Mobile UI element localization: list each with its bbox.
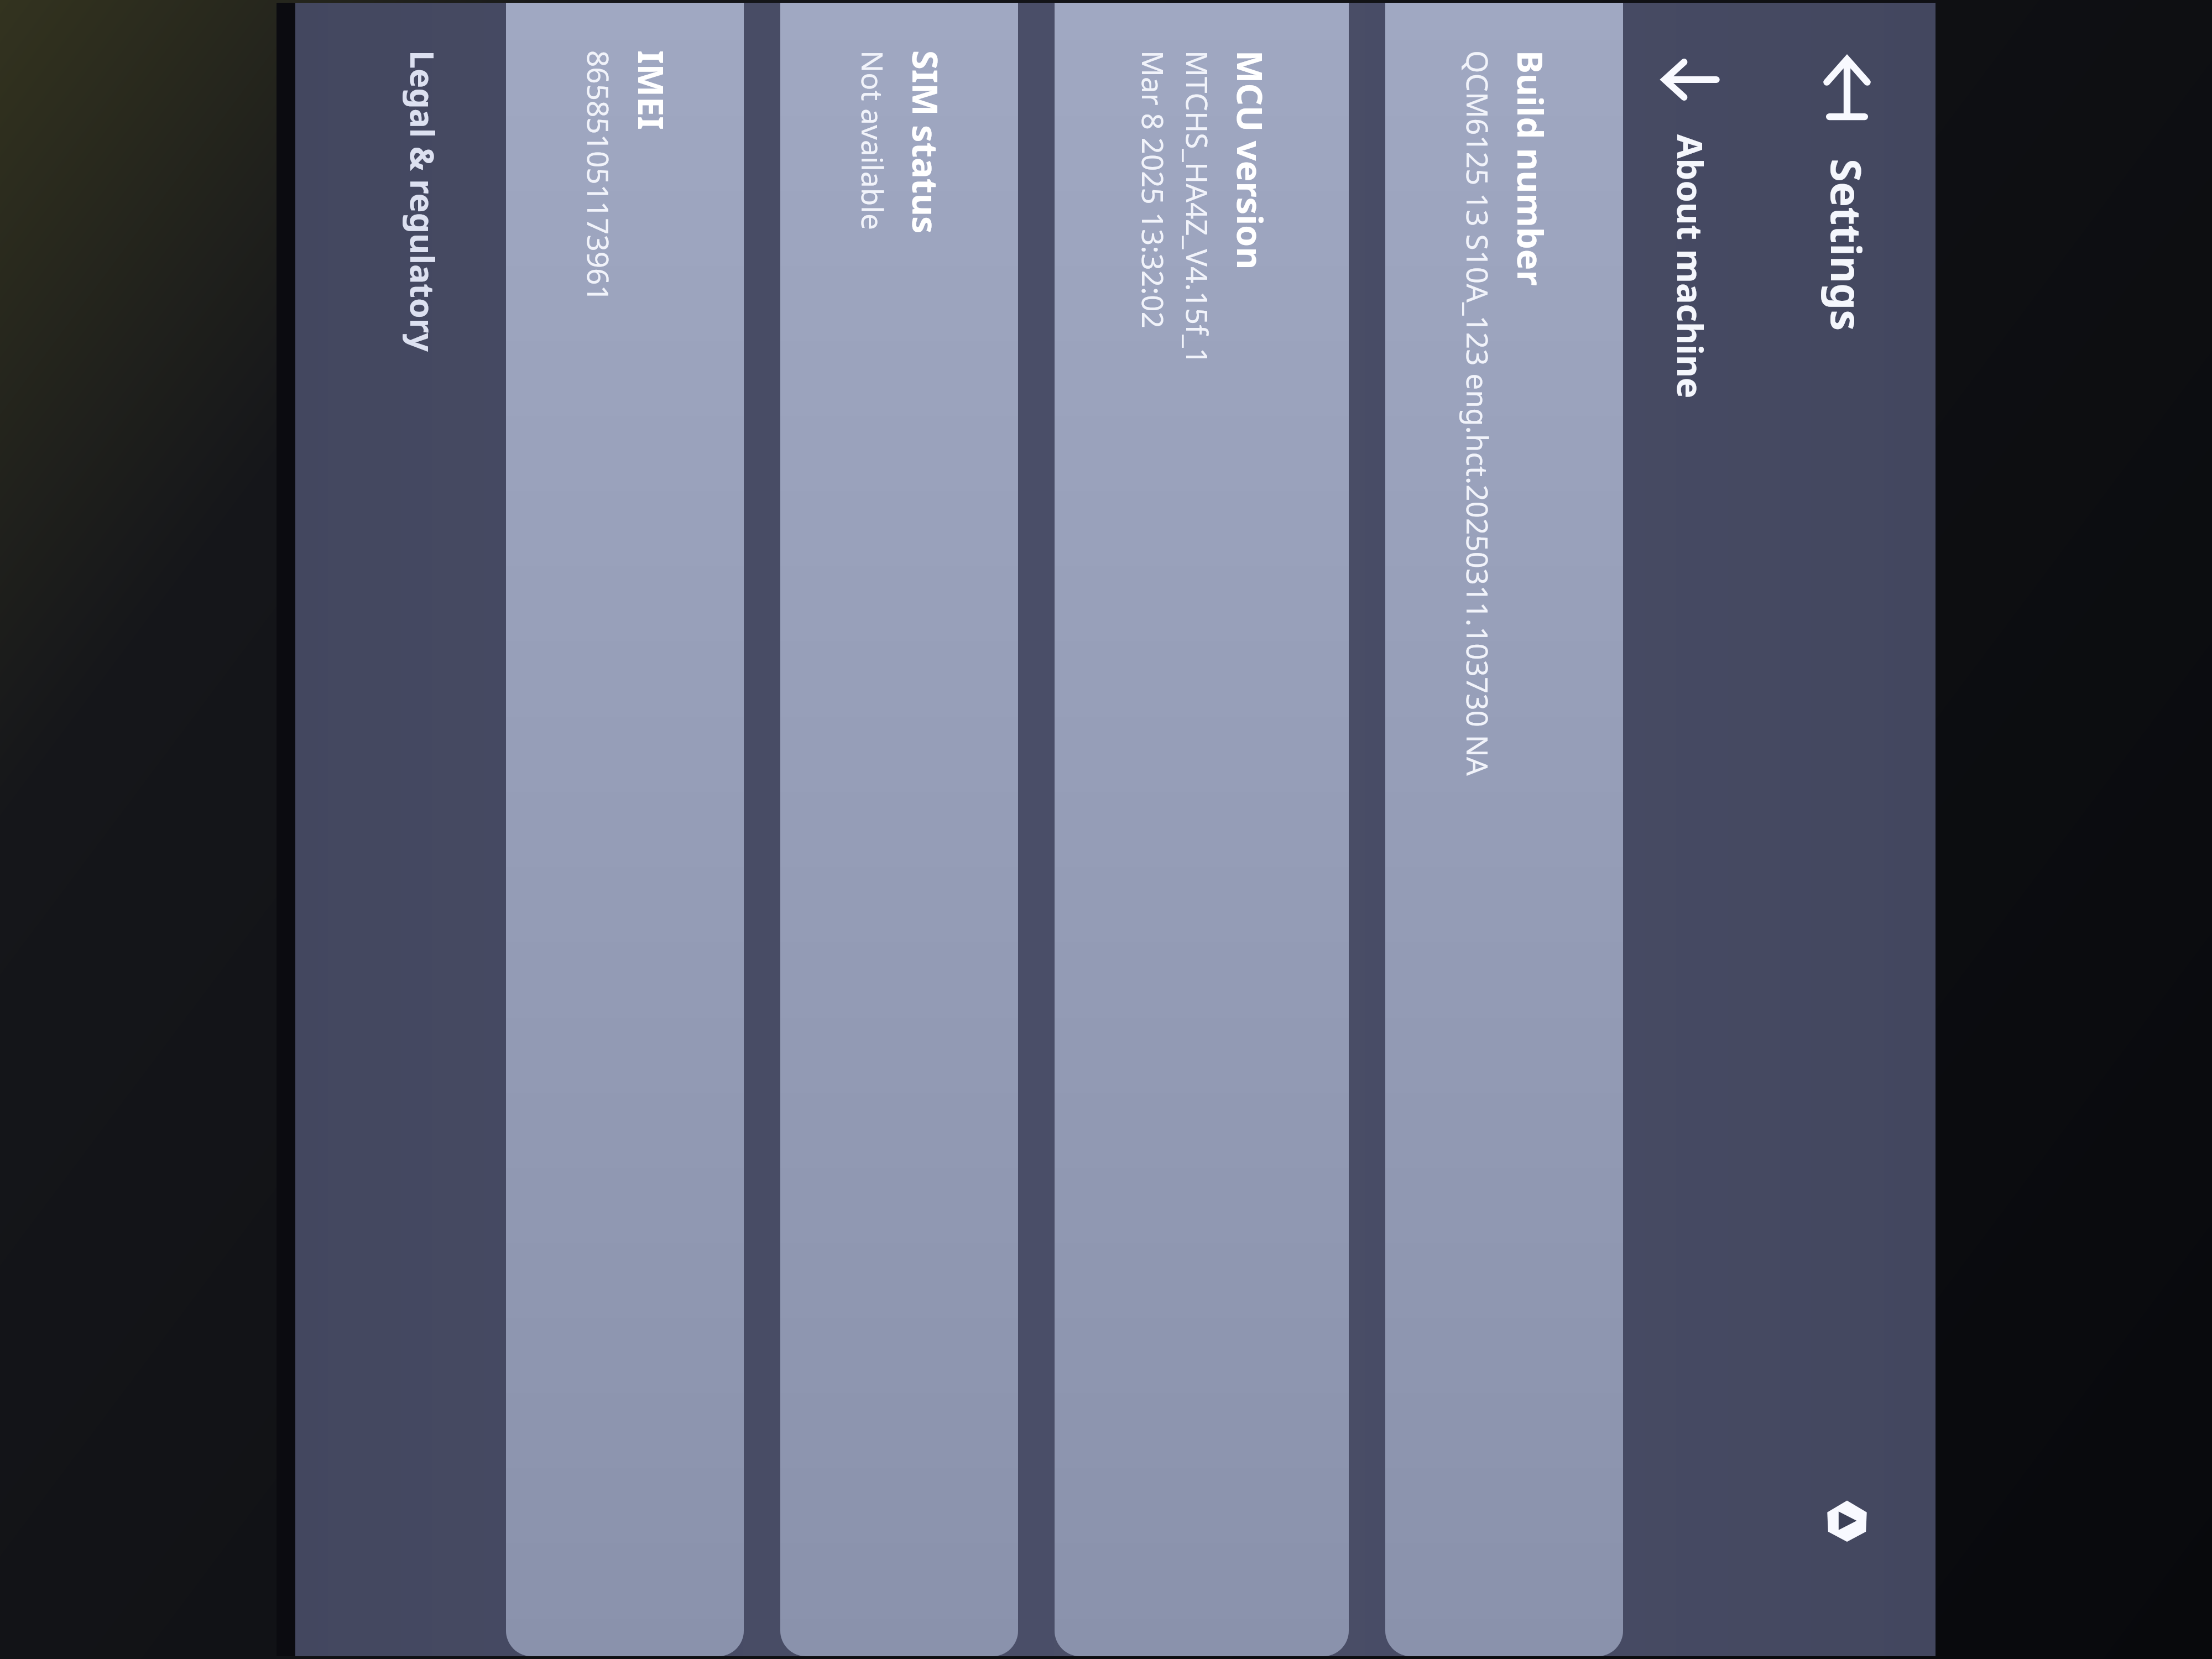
staticText: About machine — [1667, 134, 1714, 399]
staticText: Mar 8 2025 13:32:02 — [1134, 50, 1173, 328]
button[interactable]: MCU version — [1055, 3, 1349, 1656]
button[interactable]: About machine — [1623, 3, 1759, 1656]
button[interactable]: Legal & regulatory — [340, 3, 506, 1656]
staticText: MCU version — [1227, 50, 1274, 270]
button[interactable]: Back — [1794, 35, 1900, 140]
staticText: 865851051173961 — [579, 50, 619, 302]
staticText: Settings — [1818, 159, 1876, 331]
button[interactable]: Status indicator — [1806, 1479, 1888, 1562]
staticText: IMEI — [628, 50, 675, 130]
staticText: Legal & regulatory — [401, 50, 445, 352]
staticText: QCM6125 13 S10A_123 eng.hct.20250311.103… — [1458, 50, 1498, 776]
button[interactable]: SIM status — [780, 3, 1018, 1656]
staticText: Not available — [853, 50, 893, 230]
button[interactable]: Build number — [1385, 3, 1623, 1656]
button[interactable]: IMEI — [506, 3, 744, 1656]
staticText: SIM status — [902, 50, 950, 234]
staticText: MTCHS_HA4Z_V4.15f_1 — [1178, 50, 1218, 365]
staticText: Build number — [1507, 50, 1554, 286]
